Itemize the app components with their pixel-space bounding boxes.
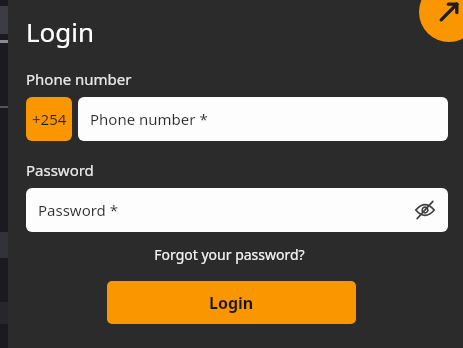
button[interactable]: +254 (26, 97, 72, 141)
staticText: Phone number * (90, 109, 208, 129)
staticText: Login (26, 14, 95, 49)
button[interactable]: Forgot your password? (8, 245, 451, 264)
button[interactable]: Show password (409, 194, 441, 226)
button[interactable]: Password * (26, 188, 448, 232)
staticText: Password (26, 160, 94, 180)
button[interactable]: Login (107, 281, 356, 324)
staticText: Login (209, 292, 254, 314)
staticText: +254 (32, 109, 67, 129)
button[interactable]: Open (419, 0, 463, 42)
button[interactable]: Phone number * (78, 97, 448, 141)
staticText: Phone number (26, 69, 132, 89)
staticText: Password * (38, 200, 119, 220)
